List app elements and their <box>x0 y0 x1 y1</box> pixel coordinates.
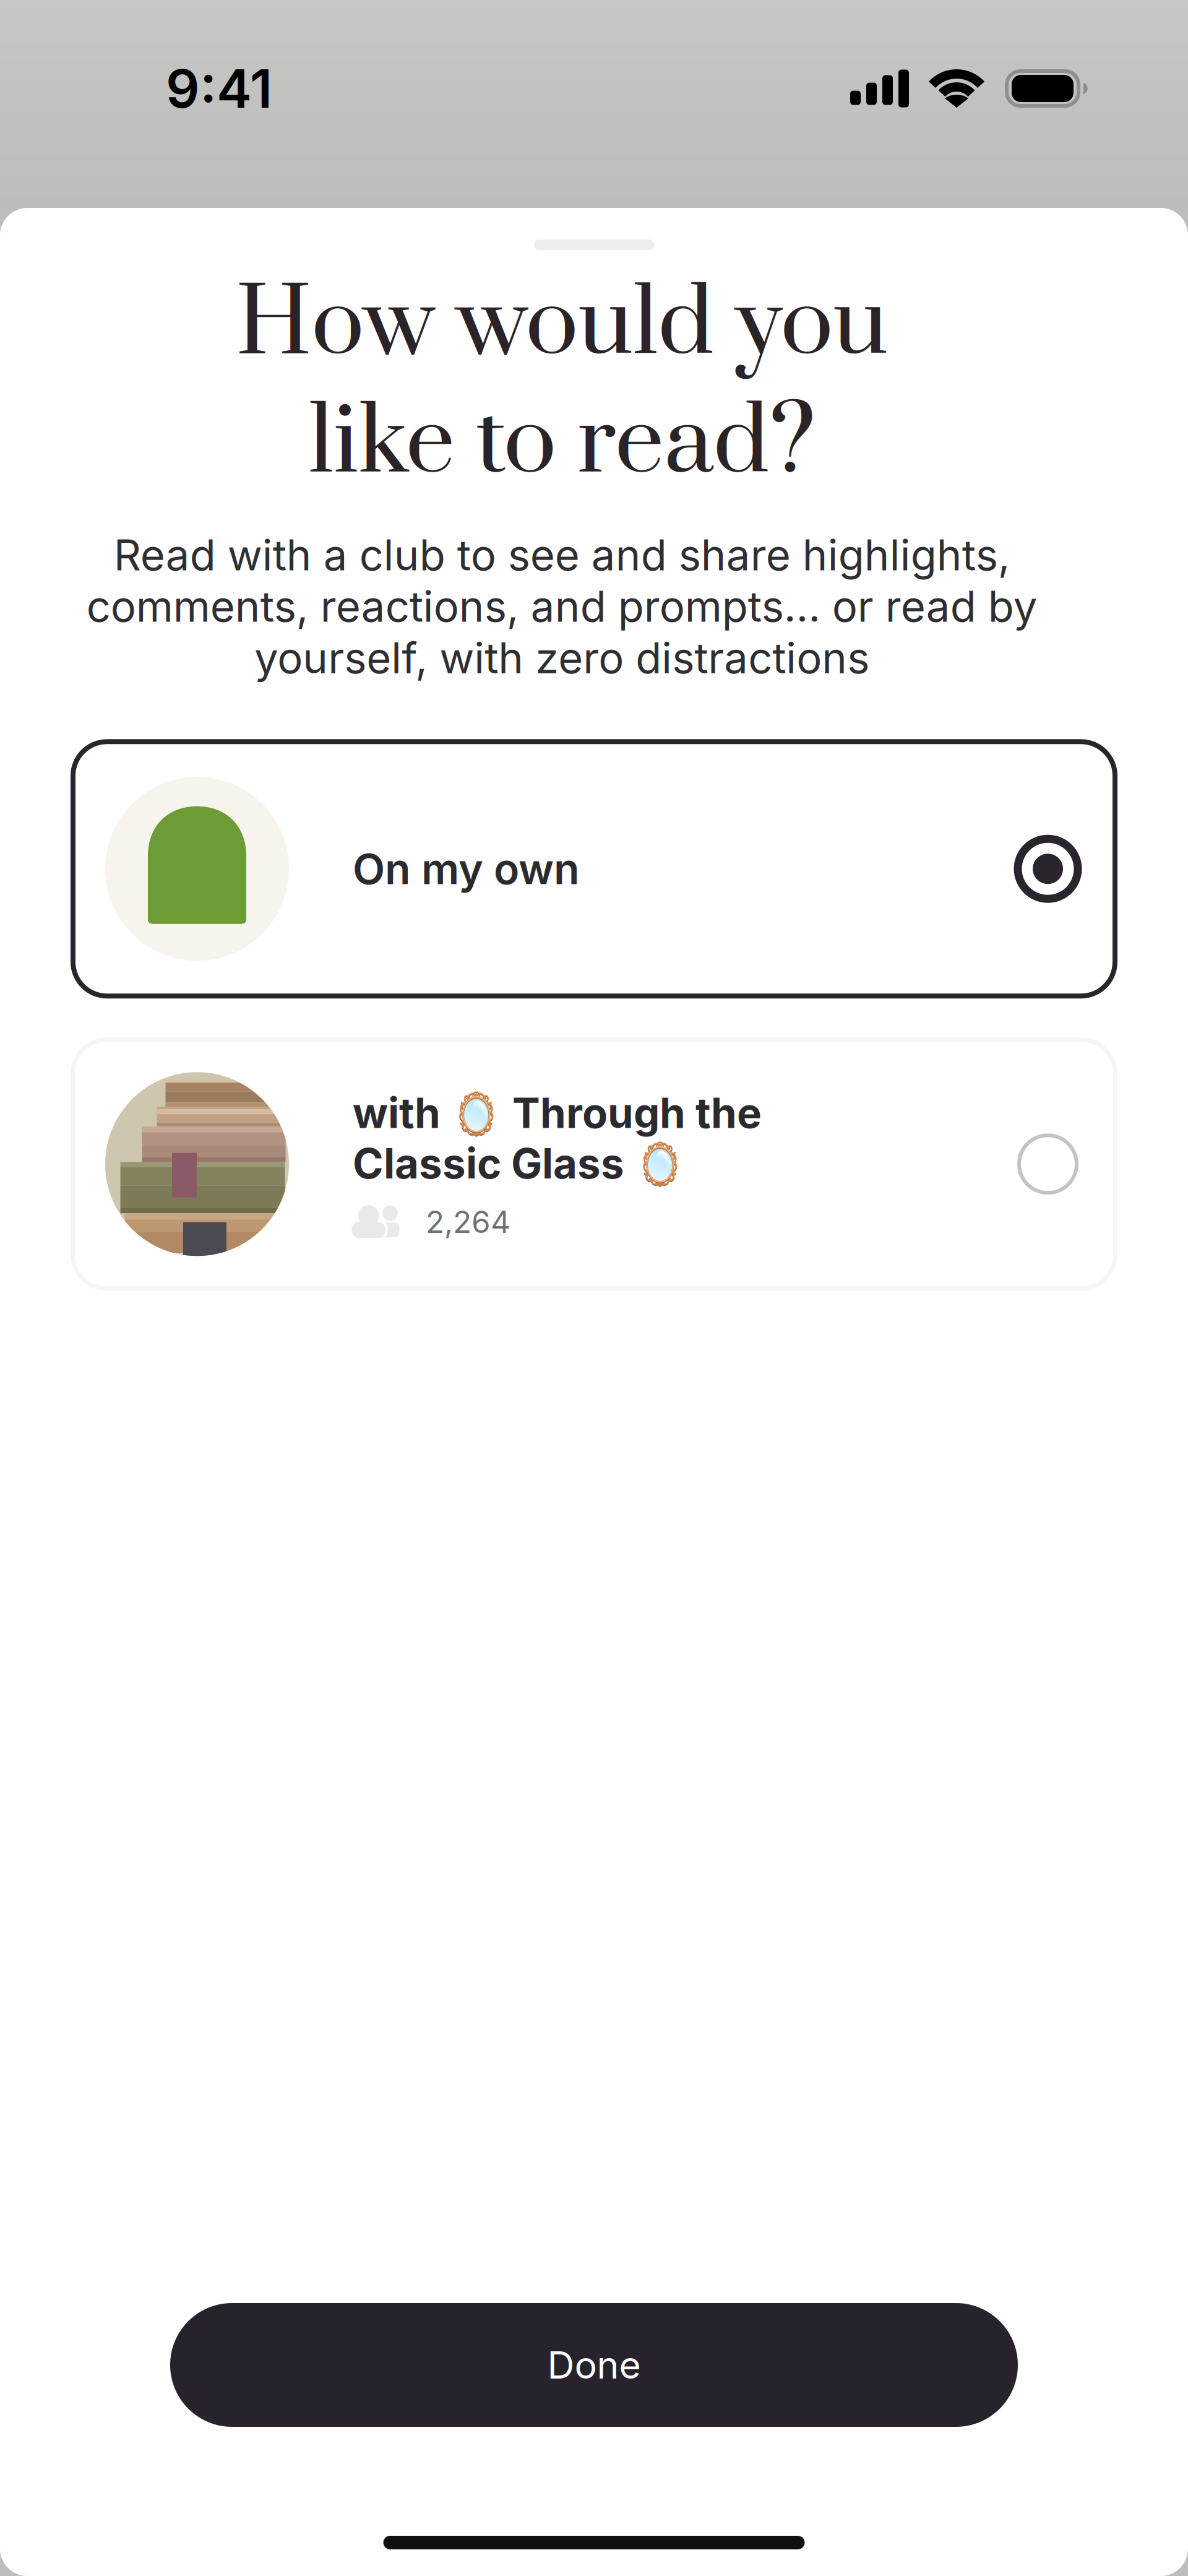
staticText: 9:41 <box>166 57 272 120</box>
staticText: with 🪞 Through the Classic Glass 🪞 <box>353 1088 762 1189</box>
staticText: 2,264 <box>426 1203 510 1240</box>
staticText: Done <box>547 2342 641 2388</box>
button[interactable]: On my own <box>71 739 1117 999</box>
button[interactable]: Done <box>170 2303 1018 2427</box>
staticText: On my own <box>353 843 580 894</box>
button[interactable]: with 🪞 Through the Classic Glass 🪞 <box>71 1038 1117 1291</box>
staticText: How would you like to read? <box>236 266 888 503</box>
staticText: Read with a club to see and share highli… <box>86 529 1037 683</box>
